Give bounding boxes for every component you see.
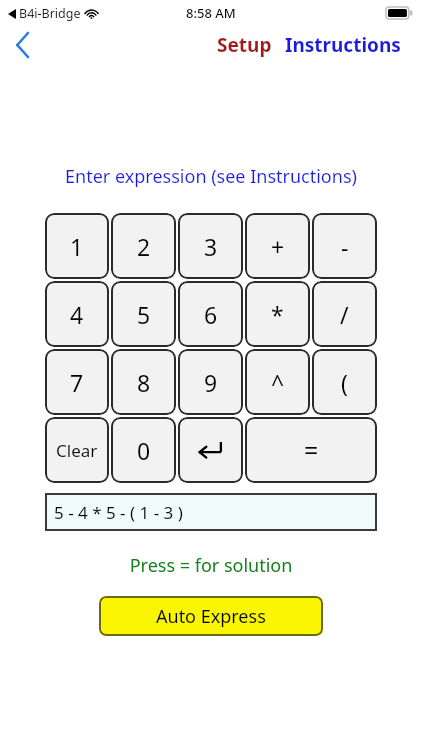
button[interactable]: 1 bbox=[45, 213, 109, 279]
staticText: Enter expression (see Instructions) bbox=[0, 164, 422, 189]
staticText: 4 bbox=[70, 299, 84, 330]
button[interactable]: ( bbox=[312, 349, 377, 415]
staticText: 5 - 4 * 5 - ( 1 - 3 ) bbox=[54, 501, 183, 524]
button[interactable]: / bbox=[312, 281, 377, 347]
staticText: Instructions bbox=[285, 32, 401, 58]
button[interactable]: Clear bbox=[45, 417, 109, 483]
button[interactable]: 0 bbox=[111, 417, 176, 483]
staticText: Setup bbox=[217, 32, 272, 58]
button[interactable]: = bbox=[245, 417, 377, 483]
staticText: + bbox=[271, 231, 285, 262]
button[interactable]: ^ bbox=[245, 349, 310, 415]
button[interactable]: Enter bbox=[178, 417, 243, 483]
button[interactable]: 5 bbox=[111, 281, 176, 347]
staticText: 2 bbox=[137, 231, 151, 262]
button[interactable]: 2 bbox=[111, 213, 176, 279]
button[interactable]: - bbox=[312, 213, 377, 279]
staticText: 3 bbox=[204, 231, 218, 262]
button[interactable]: + bbox=[245, 213, 310, 279]
staticText: 8 bbox=[137, 367, 151, 398]
button[interactable]: Back bbox=[0, 26, 44, 64]
staticText: Clear bbox=[56, 439, 98, 462]
button[interactable]: 9 bbox=[178, 349, 243, 415]
button[interactable]: 4 bbox=[45, 281, 109, 347]
staticText: B4i-Bridge bbox=[19, 5, 81, 22]
button[interactable]: 7 bbox=[45, 349, 109, 415]
staticText: Auto Express bbox=[156, 604, 266, 629]
button[interactable]: Auto Express bbox=[99, 596, 323, 636]
staticText: ^ bbox=[271, 367, 285, 398]
staticText: Press = for solution bbox=[0, 553, 422, 578]
button[interactable]: 8 bbox=[111, 349, 176, 415]
button[interactable]: 6 bbox=[178, 281, 243, 347]
staticText: / bbox=[340, 299, 349, 330]
staticText: ( bbox=[341, 367, 348, 398]
other: Enter bbox=[178, 417, 243, 483]
button[interactable]: 5 - 4 * 5 - ( 1 - 3 ) bbox=[45, 493, 377, 531]
staticText: 1 bbox=[70, 231, 84, 262]
staticText: = bbox=[304, 433, 319, 467]
staticText: 9 bbox=[204, 367, 218, 398]
staticText: 0 bbox=[137, 435, 151, 466]
button[interactable]: Instructions bbox=[283, 32, 403, 58]
staticText: 7 bbox=[70, 367, 84, 398]
staticText: * bbox=[271, 299, 284, 330]
staticText: 8:58 AM bbox=[186, 4, 236, 22]
button[interactable]: 3 bbox=[178, 213, 243, 279]
button[interactable]: * bbox=[245, 281, 310, 347]
button[interactable]: Setup bbox=[215, 32, 274, 58]
staticText: - bbox=[341, 231, 349, 262]
staticText: 5 bbox=[137, 299, 151, 330]
staticText: 6 bbox=[204, 299, 218, 330]
